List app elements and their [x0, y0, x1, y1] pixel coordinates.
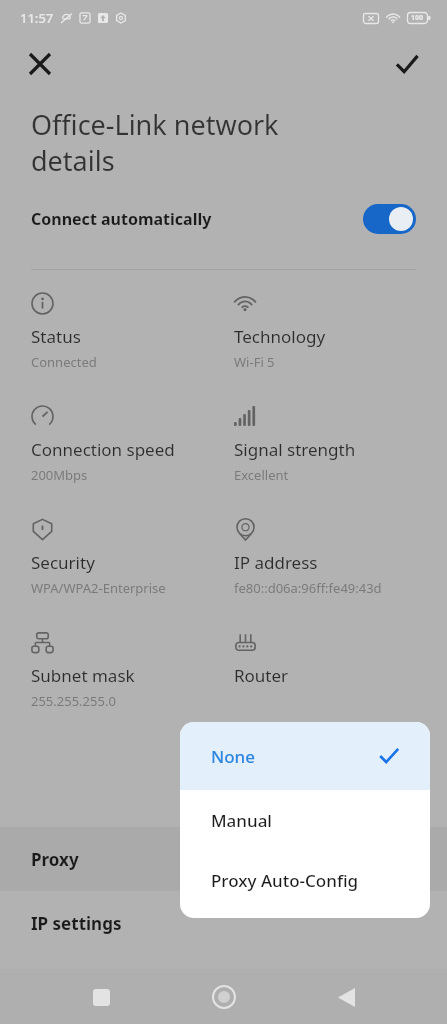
staticText: Connected: [31, 353, 97, 371]
staticText: fe80::d06a:96ff:fe49:43d: [234, 579, 382, 597]
staticText: IP address: [234, 551, 318, 574]
staticText: WPA/WPA2-Enterprise: [31, 579, 166, 597]
staticText: Excellent: [234, 466, 289, 484]
staticText: Manual: [211, 809, 272, 832]
button[interactable]: Close: [18, 42, 62, 86]
staticText: Router: [234, 664, 289, 687]
button[interactable]: Recents: [79, 975, 123, 1019]
staticText: Technology: [234, 325, 326, 348]
staticText: Connect automatically: [31, 208, 212, 230]
staticText: 255.255.255.0: [31, 692, 116, 710]
staticText: 100: [411, 13, 424, 23]
button[interactable]: Manual: [180, 790, 430, 850]
staticText: Office-Link network details: [31, 106, 279, 179]
staticText: 11:57: [20, 9, 54, 27]
staticText: None: [211, 745, 255, 768]
button[interactable]: None: [180, 722, 430, 790]
staticText: 200Mbps: [31, 466, 88, 484]
button[interactable]: Home: [202, 975, 246, 1019]
staticText: IP settings: [31, 912, 122, 935]
button[interactable]: Proxy Auto-Config: [180, 850, 430, 910]
button[interactable]: Proxy: [0, 827, 447, 891]
staticText: Subnet mask: [31, 664, 135, 687]
staticText: Connection speed: [31, 438, 175, 461]
staticText: Security: [31, 551, 95, 574]
staticText: Proxy: [31, 848, 79, 871]
button[interactable]: Save: [385, 42, 429, 86]
staticText: Status: [31, 325, 81, 348]
staticText: Wi-Fi 5: [234, 353, 275, 371]
button[interactable]: IP settings: [0, 891, 447, 955]
staticText: Proxy Auto-Config: [211, 869, 359, 892]
staticText: Signal strength: [234, 438, 356, 461]
button[interactable]: Back: [324, 975, 368, 1019]
button[interactable]: Connect automatically: [0, 197, 447, 241]
